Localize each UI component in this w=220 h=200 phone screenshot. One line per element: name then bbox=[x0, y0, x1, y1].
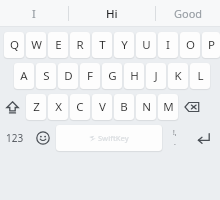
staticText: E bbox=[55, 37, 62, 53]
button[interactable]: Punctuation bbox=[162, 125, 188, 151]
staticText: Good bbox=[174, 6, 203, 21]
staticText: J bbox=[154, 68, 158, 84]
staticText: X bbox=[55, 99, 62, 115]
staticText: I bbox=[166, 37, 170, 53]
button[interactable]: T bbox=[92, 32, 112, 58]
button[interactable]: Shift bbox=[0, 94, 24, 120]
button[interactable]: D bbox=[58, 63, 78, 89]
staticText: N bbox=[142, 99, 151, 115]
button[interactable]: Enter bbox=[188, 125, 218, 151]
staticText: W bbox=[31, 37, 42, 53]
staticText: G bbox=[108, 68, 117, 84]
button[interactable]: Z bbox=[26, 94, 46, 120]
staticText: B bbox=[120, 99, 128, 115]
button[interactable]: R bbox=[70, 32, 90, 58]
staticText: Y bbox=[121, 37, 128, 53]
button[interactable]: 123 bbox=[0, 125, 30, 151]
button[interactable]: X bbox=[48, 94, 68, 120]
staticText: U bbox=[142, 37, 151, 53]
staticText: H bbox=[130, 68, 139, 84]
button[interactable]: G bbox=[102, 63, 122, 89]
button[interactable]: S bbox=[36, 63, 56, 89]
button[interactable]: Backspace bbox=[180, 94, 204, 120]
button[interactable]: K bbox=[168, 63, 188, 89]
staticText: Z bbox=[33, 99, 40, 115]
staticText: Hi bbox=[106, 6, 118, 22]
button[interactable]: C bbox=[70, 94, 90, 120]
button[interactable]: Space bbox=[56, 125, 162, 151]
button[interactable]: O bbox=[180, 32, 200, 58]
button[interactable]: Y bbox=[114, 32, 134, 58]
button[interactable]: E bbox=[48, 32, 68, 58]
button[interactable]: Emoji bbox=[30, 125, 56, 151]
button[interactable]: P bbox=[202, 32, 220, 58]
button[interactable]: Hi bbox=[69, 0, 155, 27]
staticText: . bbox=[174, 138, 176, 148]
button[interactable]: A bbox=[14, 63, 34, 89]
button[interactable]: I bbox=[158, 32, 178, 58]
button[interactable]: M bbox=[158, 94, 178, 120]
staticText: D bbox=[64, 68, 73, 84]
staticText: C bbox=[76, 99, 84, 115]
button[interactable]: N bbox=[136, 94, 156, 120]
staticText: R bbox=[76, 37, 84, 53]
staticText: S bbox=[43, 68, 50, 84]
staticText: V bbox=[99, 99, 106, 115]
staticText: SwiftKey bbox=[98, 133, 129, 143]
button[interactable]: L bbox=[190, 63, 210, 89]
button[interactable]: J bbox=[146, 63, 166, 89]
button[interactable]: W bbox=[26, 32, 46, 58]
staticText: !, bbox=[173, 128, 177, 137]
staticText: F bbox=[87, 68, 93, 84]
button[interactable]: U bbox=[136, 32, 156, 58]
staticText: 123 bbox=[6, 131, 24, 145]
staticText: A bbox=[20, 68, 28, 84]
staticText: T bbox=[99, 37, 106, 53]
button[interactable]: V bbox=[92, 94, 112, 120]
staticText: M bbox=[163, 99, 174, 115]
button[interactable]: H bbox=[124, 63, 144, 89]
button[interactable]: B bbox=[114, 94, 134, 120]
button[interactable]: F bbox=[80, 63, 100, 89]
button[interactable]: Q bbox=[4, 32, 24, 58]
button[interactable]: Good bbox=[156, 0, 220, 27]
staticText: I bbox=[32, 6, 36, 21]
button[interactable]: I bbox=[0, 0, 68, 27]
staticText: Q bbox=[10, 37, 19, 53]
staticText: P bbox=[208, 37, 215, 53]
staticText: O bbox=[186, 37, 195, 53]
staticText: L bbox=[197, 68, 204, 84]
staticText: K bbox=[174, 68, 182, 84]
